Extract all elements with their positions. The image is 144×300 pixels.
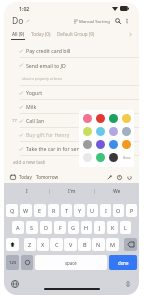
button[interactable]: Y — [74, 204, 85, 217]
button[interactable]: Colour — [122, 114, 131, 123]
button[interactable]: Yogurt — [4, 86, 139, 100]
staticText: Manual Sorting — [79, 18, 110, 24]
button[interactable]: L — [120, 221, 131, 234]
button[interactable]: Z — [24, 238, 36, 251]
button[interactable]: Colour — [96, 153, 105, 162]
button[interactable]: X — [37, 238, 49, 251]
button[interactable]: More tabs — [128, 32, 133, 37]
staticText: Milk — [26, 103, 37, 110]
staticText: Take the car in for service — [26, 145, 88, 152]
staticText: We — [113, 188, 121, 195]
button[interactable]: G — [68, 221, 79, 234]
button[interactable]: K — [107, 221, 118, 234]
staticText: H — [84, 224, 89, 231]
staticText: R — [52, 207, 56, 214]
button[interactable]: Backspace — [124, 238, 137, 251]
button[interactable]: Colour — [122, 127, 131, 136]
staticText: U — [90, 207, 95, 214]
button[interactable]: We — [95, 183, 139, 199]
button[interactable]: R — [48, 204, 59, 217]
button[interactable]: U — [87, 204, 98, 217]
button[interactable]: D — [40, 221, 52, 234]
button[interactable]: Buy gift for Henry — [4, 128, 139, 142]
button[interactable]: Dictate — [123, 279, 133, 289]
button[interactable]: I'm — [50, 183, 94, 199]
button[interactable]: C — [50, 238, 63, 251]
button[interactable]: B — [78, 238, 91, 251]
button[interactable]: Default Group (9) — [57, 32, 95, 38]
button[interactable]: Milk — [4, 100, 139, 114]
button[interactable]: O — [113, 204, 124, 217]
button[interactable]: Colour — [109, 114, 118, 123]
staticText: Send email to JD — [26, 62, 66, 69]
staticText: done — [118, 260, 129, 266]
button[interactable]: Attach file — [126, 174, 133, 181]
button[interactable]: Take the car in for service — [4, 142, 139, 156]
staticText: add a new task — [13, 159, 46, 165]
button[interactable]: I — [4, 183, 49, 199]
button[interactable]: F — [54, 221, 66, 234]
staticText: Q — [10, 207, 15, 214]
staticText: Today — [19, 174, 32, 180]
staticText: I — [26, 188, 28, 195]
button[interactable]: Colour — [96, 114, 105, 123]
button[interactable]: done — [109, 255, 137, 270]
staticText: O — [116, 207, 121, 214]
button[interactable]: J — [94, 221, 105, 234]
button[interactable]: I — [100, 204, 111, 217]
button[interactable]: S — [26, 221, 38, 234]
button[interactable]: Search — [114, 17, 122, 25]
button[interactable]: T — [61, 204, 72, 217]
button[interactable]: Colour — [83, 114, 92, 123]
button[interactable]: Today (0) — [31, 32, 51, 38]
staticText: V — [69, 241, 73, 248]
button[interactable]: Colour — [83, 127, 92, 136]
staticText: L — [124, 224, 127, 231]
button[interactable]: space — [35, 255, 107, 270]
button[interactable]: Colour — [109, 140, 118, 149]
button[interactable]: Colour — [96, 140, 105, 149]
staticText: Do — [12, 15, 24, 27]
button[interactable]: Emoji — [21, 255, 33, 270]
button[interactable]: Next keyboard — [10, 279, 20, 289]
button[interactable]: E — [34, 204, 46, 217]
staticText: 77 — [12, 118, 17, 124]
button[interactable]: Reminder — [116, 174, 123, 181]
staticText: X — [41, 241, 45, 248]
button[interactable]: Shift — [6, 238, 19, 251]
button[interactable]: V — [64, 238, 77, 251]
staticText: E — [38, 207, 42, 214]
button[interactable]: Today — [19, 174, 32, 180]
button[interactable]: Colour — [122, 140, 131, 149]
button[interactable]: More options — [123, 17, 131, 25]
button[interactable]: W — [20, 204, 32, 217]
button[interactable]: Colour — [83, 153, 92, 162]
staticText: 1:02 — [19, 5, 30, 12]
button[interactable]: N — [92, 238, 105, 251]
staticText: K — [111, 224, 115, 231]
button[interactable]: 123 — [6, 255, 19, 270]
staticText: T — [65, 207, 69, 214]
button[interactable]: Tag — [106, 174, 113, 181]
button[interactable]: Colour — [96, 127, 105, 136]
button[interactable]: Colour — [109, 153, 118, 162]
button[interactable]: 77 — [4, 114, 139, 128]
staticText: Yogurt — [26, 89, 43, 96]
button[interactable]: Pay credit card bill — [4, 44, 139, 58]
button[interactable]: P — [126, 204, 137, 217]
button[interactable]: Tomorrow — [36, 174, 59, 180]
button[interactable]: Send email to JD — [4, 58, 139, 86]
button[interactable]: Colour — [83, 140, 92, 149]
button[interactable]: Manual Sorting — [74, 18, 110, 24]
button[interactable]: A — [12, 221, 24, 234]
button[interactable]: H — [81, 221, 92, 234]
staticText: space — [65, 260, 77, 266]
staticText: D — [44, 224, 49, 231]
button[interactable]: All (9) — [11, 31, 25, 40]
button[interactable]: Colour — [109, 127, 118, 136]
staticText: Pay credit card bill — [26, 47, 71, 54]
button[interactable]: M — [106, 238, 119, 251]
staticText: G — [71, 224, 76, 231]
button[interactable]: Q — [6, 204, 18, 217]
staticText: Y — [78, 207, 82, 214]
